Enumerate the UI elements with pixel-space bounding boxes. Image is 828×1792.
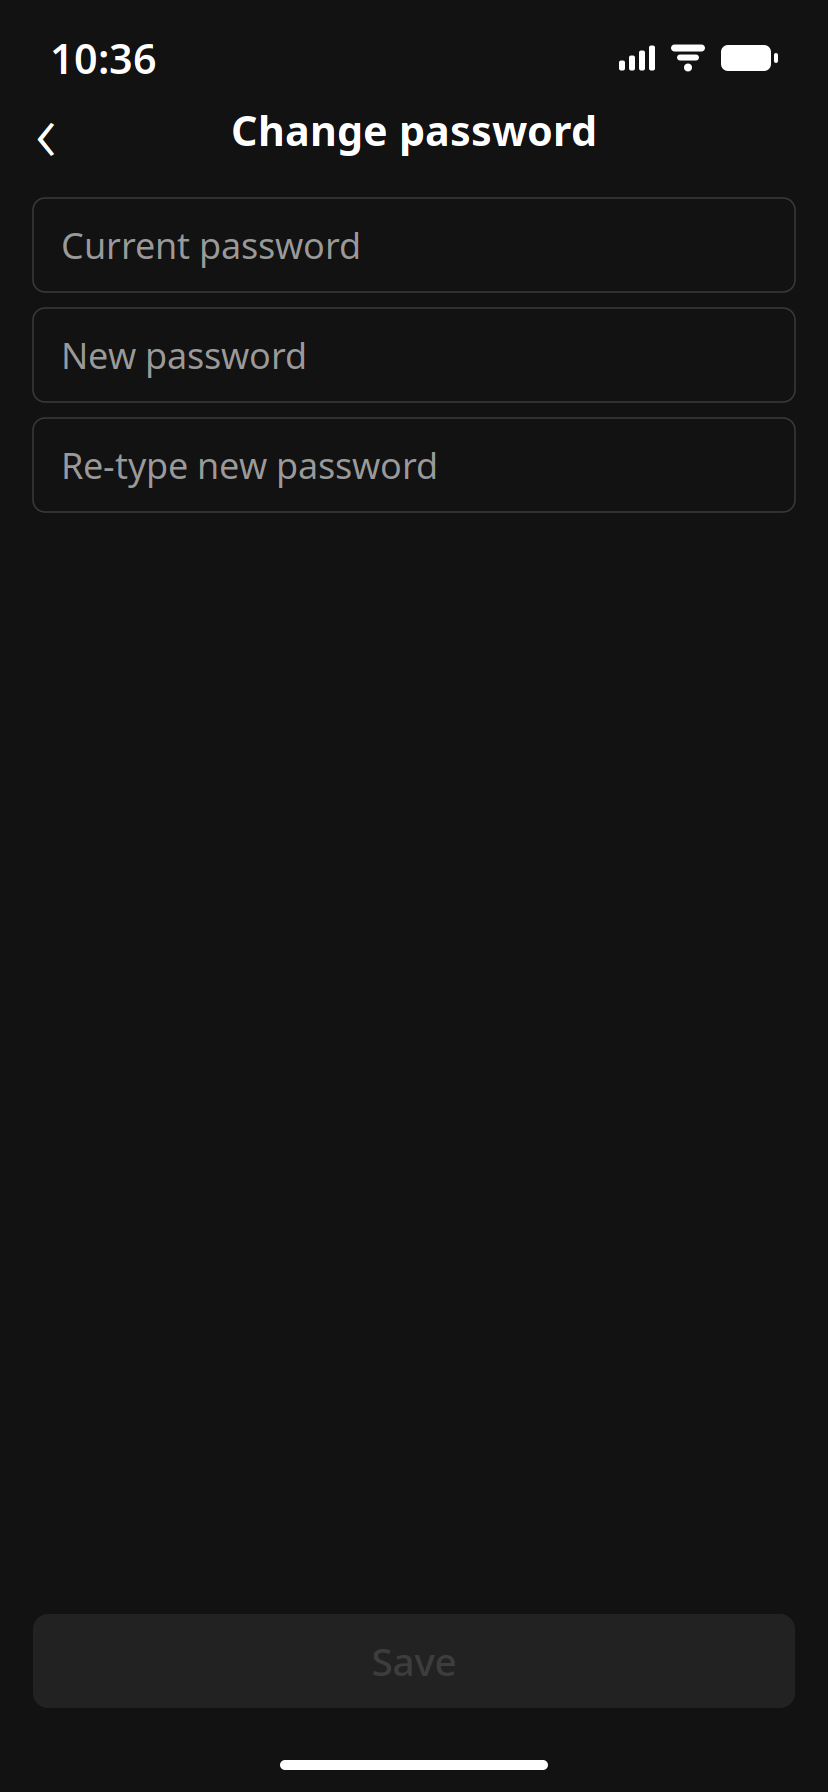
- staticText: Current password: [61, 221, 361, 269]
- staticText: Change password: [231, 103, 597, 157]
- button[interactable]: Current password: [33, 198, 795, 292]
- staticText: New password: [61, 331, 307, 379]
- button[interactable]: New password: [33, 308, 795, 402]
- staticText: 10:36: [50, 31, 157, 85]
- button[interactable]: Re-type new password: [33, 418, 795, 512]
- button[interactable]: Back: [14, 95, 78, 165]
- staticText: Save: [371, 1635, 456, 1687]
- staticText: ‹: [35, 75, 57, 185]
- staticText: Re-type new password: [61, 441, 438, 489]
